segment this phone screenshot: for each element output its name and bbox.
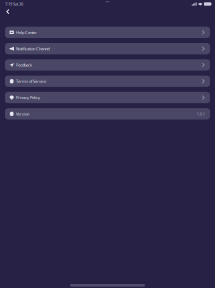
staticText: Help Center [16, 30, 37, 35]
staticText: Feedback [16, 62, 32, 68]
button[interactable]: Back [4, 8, 12, 15]
staticText: 7:19 Sat 30 [5, 1, 23, 7]
staticText: 1.0.1 [197, 111, 205, 116]
button[interactable]: Version [5, 108, 210, 119]
staticText: Privacy Policy [16, 95, 40, 100]
button[interactable]: Help Center [5, 27, 210, 38]
staticText: Terms of Service [16, 79, 46, 84]
button[interactable]: Privacy Policy [5, 92, 210, 103]
staticText: Version [16, 111, 29, 116]
button[interactable]: Feedback [5, 59, 210, 71]
button[interactable]: Notification Channel [5, 43, 210, 54]
button[interactable]: Terms of Service [5, 76, 210, 87]
staticText: Notification Channel [16, 46, 50, 51]
